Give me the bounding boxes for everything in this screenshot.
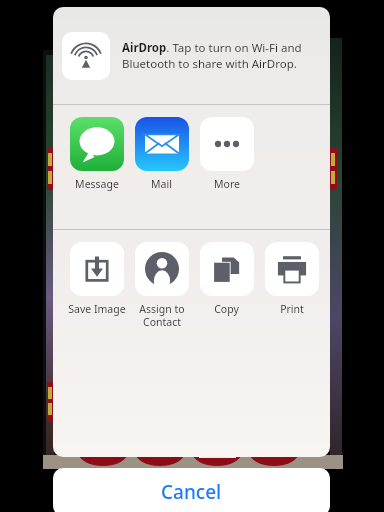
staticText: Message bbox=[75, 177, 119, 191]
staticText: Save Image bbox=[68, 302, 126, 316]
staticText: Assign to Contact bbox=[139, 302, 185, 329]
button[interactable]: Message bbox=[64, 115, 129, 191]
staticText: AirDrop. Tap to turn on Wi-Fi and Blueto… bbox=[122, 40, 318, 71]
staticText: Print bbox=[280, 302, 304, 316]
button[interactable]: Print bbox=[259, 240, 324, 316]
button[interactable]: Assign to Contact bbox=[129, 240, 194, 329]
other: Mail bbox=[145, 127, 179, 161]
staticText: Copy bbox=[214, 302, 239, 316]
other: Copy bbox=[212, 254, 242, 284]
button[interactable]: More bbox=[194, 115, 259, 191]
other: AirDrop bbox=[70, 40, 102, 72]
other: More bbox=[212, 129, 242, 159]
staticText: More bbox=[214, 177, 240, 191]
other: Save Image bbox=[82, 254, 112, 284]
other: Assign to Contact bbox=[145, 252, 179, 286]
button[interactable]: Cancel bbox=[53, 468, 330, 512]
staticText: Cancel bbox=[161, 479, 222, 505]
other: Print bbox=[276, 253, 308, 285]
button[interactable]: Save Image bbox=[64, 240, 129, 316]
button[interactable]: Mail bbox=[129, 115, 194, 191]
staticText: Mail bbox=[151, 177, 172, 191]
other: Message bbox=[78, 125, 116, 163]
button[interactable]: Copy bbox=[194, 240, 259, 316]
button[interactable]: AirDrop bbox=[53, 7, 330, 104]
